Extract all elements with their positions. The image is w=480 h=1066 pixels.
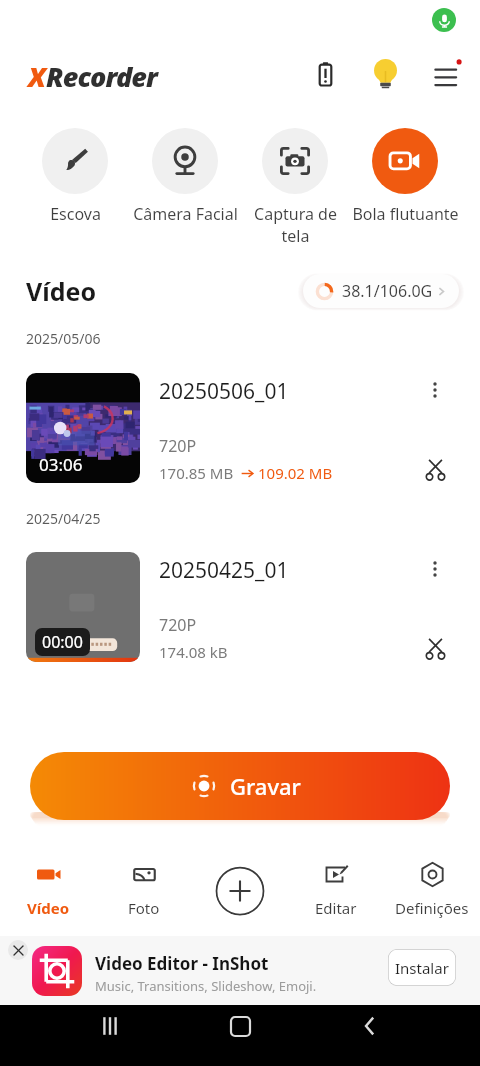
button[interactable]: 03:06 <box>0 373 480 487</box>
staticText: Recorder <box>46 58 157 95</box>
button[interactable]: More options <box>419 374 451 406</box>
button[interactable]: Captura de tela <box>240 128 350 247</box>
staticText: 20250506_01 <box>159 377 289 406</box>
button[interactable]: Trim video <box>419 632 451 664</box>
button[interactable]: 00:00 <box>0 552 480 666</box>
staticText: X <box>28 58 46 95</box>
staticText: Editar <box>315 898 357 918</box>
staticText: 00:00 <box>42 631 83 653</box>
staticText: 720P <box>159 614 197 636</box>
button[interactable]: Back <box>350 1006 390 1046</box>
staticText: Instalar <box>395 958 449 978</box>
staticText: Foto <box>128 898 160 918</box>
staticText: 03:06 <box>39 453 83 476</box>
button[interactable]: Bola flutuante <box>350 128 460 225</box>
staticText: 38.1/106.0G <box>342 280 433 302</box>
button[interactable]: Trim video <box>419 453 451 485</box>
button[interactable]: Escova <box>20 128 130 225</box>
button[interactable]: 38.1/106.0G <box>303 274 459 308</box>
button[interactable]: Foto <box>96 862 192 918</box>
staticText: Vídeo <box>27 898 70 918</box>
staticText: Vídeo <box>26 274 97 308</box>
button[interactable]: Close ad <box>8 940 28 960</box>
staticText: Bola flutuante <box>352 203 459 225</box>
button[interactable]: Vídeo <box>0 862 96 918</box>
staticText: 2025/04/25 <box>26 509 101 528</box>
staticText: Captura de tela <box>254 203 337 247</box>
staticText: Gravar <box>230 771 301 801</box>
button[interactable]: Add <box>215 866 265 916</box>
staticText: 20250425_01 <box>159 556 289 585</box>
button[interactable]: Battery optimization <box>303 52 347 96</box>
button[interactable]: Câmera Facial <box>130 128 240 225</box>
staticText: Definições <box>395 898 469 918</box>
staticText: Music, Transitions, Slideshow, Emoji. <box>95 977 317 995</box>
button[interactable]: More options <box>419 553 451 585</box>
staticText: Câmera Facial <box>133 203 238 225</box>
button[interactable]: Close ad <box>0 936 480 1005</box>
staticText: 170.85 MB <box>159 463 234 483</box>
staticText: 720P <box>159 435 197 457</box>
button[interactable]: Menu <box>423 51 467 95</box>
staticText: Video Editor - InShot <box>95 952 269 975</box>
button[interactable]: Home <box>220 1006 260 1046</box>
button[interactable]: Editar <box>288 862 384 918</box>
button[interactable]: Tips <box>363 51 407 95</box>
button[interactable]: Recents <box>90 1006 130 1046</box>
staticText: 109.02 MB <box>258 463 333 483</box>
button[interactable]: Instalar <box>388 949 456 986</box>
button[interactable]: Definições <box>384 862 480 918</box>
staticText: Escova <box>50 203 101 225</box>
staticText: 174.08 kB <box>159 642 228 662</box>
other: Recording microphone <box>432 8 456 32</box>
staticText: 2025/05/06 <box>26 329 101 348</box>
button[interactable]: Gravar <box>30 752 450 820</box>
